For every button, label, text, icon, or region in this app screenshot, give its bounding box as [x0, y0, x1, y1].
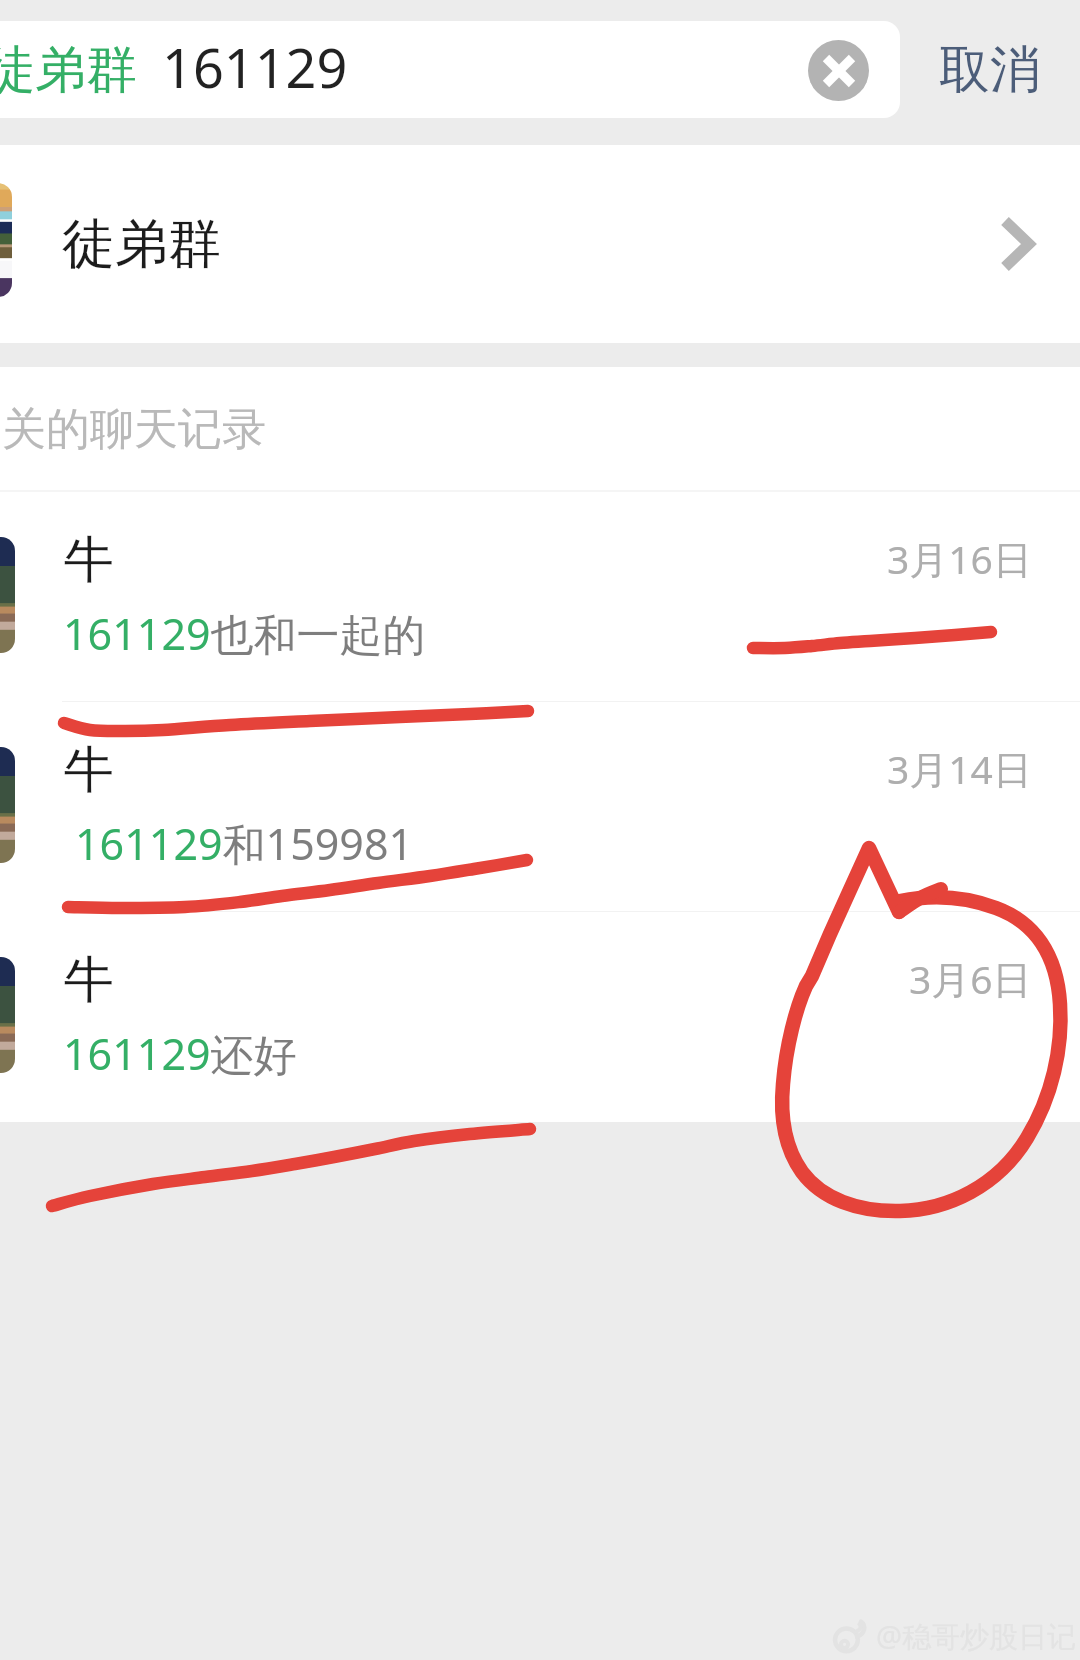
- button[interactable]: Clear search: [808, 40, 869, 101]
- staticText: 相关的聊天记录: [0, 402, 266, 457]
- staticText: 牛: [64, 529, 114, 592]
- staticText: 牛: [64, 949, 114, 1012]
- button[interactable]: 牛: [0, 912, 1080, 1122]
- button[interactable]: 牛: [0, 702, 1080, 912]
- button[interactable]: 取消: [925, 24, 1055, 116]
- staticText: 3月14日: [887, 742, 1032, 795]
- staticText: 徒弟群: [0, 38, 137, 102]
- button[interactable]: 徒弟群: [0, 145, 1080, 343]
- staticText: 161129也和一起的: [63, 604, 426, 663]
- staticText: 161129还好: [63, 1024, 297, 1083]
- staticText: 牛: [64, 739, 114, 802]
- staticText: 3月16日: [887, 532, 1032, 585]
- staticText: 3月6日: [909, 952, 1032, 1005]
- staticText: 161129和159981: [75, 814, 414, 873]
- staticText: 取消: [939, 38, 1041, 102]
- staticText: @稳哥炒股日记: [876, 1616, 1077, 1656]
- button[interactable]: 牛: [0, 492, 1080, 702]
- button[interactable]: 徒弟群: [0, 21, 900, 118]
- staticText: 161129: [162, 30, 348, 104]
- staticText: 徒弟群: [62, 211, 221, 278]
